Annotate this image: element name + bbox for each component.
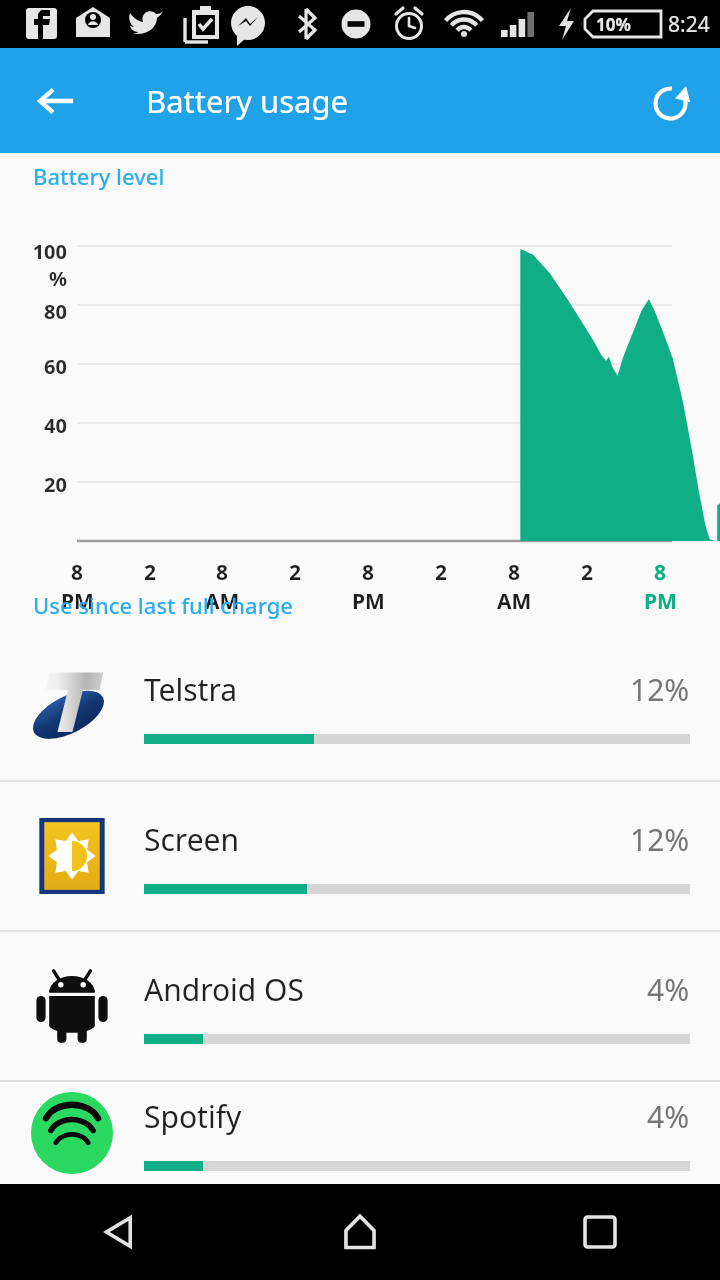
button[interactable]: Android OS <box>0 932 720 1080</box>
staticText: 60 <box>0 353 67 380</box>
staticText: 4% <box>647 969 690 1010</box>
staticText: Screen <box>144 819 630 860</box>
button[interactable]: Telstra <box>0 632 720 780</box>
staticText: 8 <box>654 558 667 587</box>
staticText: 8 <box>362 558 375 587</box>
staticText: Spotify <box>144 1096 647 1137</box>
staticText: PM <box>61 587 94 616</box>
staticText: 2 <box>581 558 594 587</box>
button[interactable]: Refresh <box>640 71 700 131</box>
staticText: PM <box>644 587 677 616</box>
staticText: AM <box>205 587 240 616</box>
staticText: Battery usage <box>146 80 349 122</box>
button[interactable]: Recent apps <box>480 1184 720 1280</box>
button[interactable]: Back <box>24 69 88 133</box>
button[interactable]: Home <box>240 1184 480 1280</box>
staticText: 20 <box>0 471 67 498</box>
staticText: 100 <box>0 238 67 265</box>
staticText: Telstra <box>144 669 630 710</box>
staticText: Android OS <box>144 969 647 1010</box>
staticText: PM <box>352 587 385 616</box>
staticText: 10% <box>596 13 631 36</box>
button[interactable]: Back <box>0 1184 240 1280</box>
button[interactable]: Spotify <box>0 1082 720 1184</box>
staticText: 8 <box>508 558 521 587</box>
staticText: 2 <box>289 558 302 587</box>
staticText: 8 <box>71 558 84 587</box>
staticText: % <box>0 265 67 292</box>
staticText: 4% <box>647 1096 690 1137</box>
staticText: 12% <box>630 819 690 860</box>
staticText: 80 <box>0 298 67 325</box>
staticText: Battery level <box>33 161 165 191</box>
staticText: 8 <box>216 558 229 587</box>
staticText: 2 <box>435 558 448 587</box>
button[interactable]: Screen <box>0 782 720 930</box>
staticText: Use since last full charge <box>33 590 293 620</box>
staticText: 40 <box>0 412 67 439</box>
staticText: 12% <box>630 669 690 710</box>
staticText: AM <box>497 587 532 616</box>
staticText: 2 <box>144 558 157 587</box>
staticText: 8:24 <box>668 10 710 39</box>
